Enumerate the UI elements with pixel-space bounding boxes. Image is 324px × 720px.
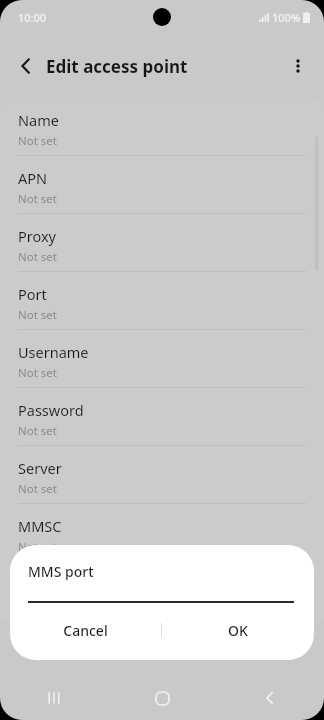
staticText: Not set xyxy=(18,423,57,439)
staticText: Password xyxy=(18,400,84,420)
button[interactable]: Recents xyxy=(0,676,108,720)
button[interactable]: MMS proxy xyxy=(0,562,324,620)
staticText: Username xyxy=(18,342,89,362)
staticText: Not set xyxy=(18,249,57,265)
staticText: OK xyxy=(228,621,248,640)
staticText: 100% xyxy=(272,10,301,25)
button[interactable]: MMSC xyxy=(0,504,324,562)
staticText: Name xyxy=(18,110,59,130)
staticText: Port xyxy=(18,284,47,304)
button[interactable]: Back xyxy=(216,676,324,720)
staticText: Server xyxy=(18,458,62,478)
button[interactable]: Home xyxy=(108,676,216,720)
staticText: Not set xyxy=(18,307,57,323)
staticText: Cancel xyxy=(63,621,108,640)
button[interactable]: Back xyxy=(6,46,46,86)
button[interactable]: APN xyxy=(0,156,324,214)
staticText: Not set xyxy=(18,481,57,497)
staticText: Not set xyxy=(18,133,57,149)
staticText: APN xyxy=(18,168,48,188)
staticText: MMS port xyxy=(28,562,94,581)
staticText: Not set xyxy=(18,365,57,381)
staticText: MMS proxy xyxy=(18,574,95,594)
button[interactable]: Port xyxy=(0,272,324,330)
button[interactable]: Username xyxy=(0,330,324,388)
staticText: Proxy xyxy=(18,226,57,246)
button[interactable]: Proxy xyxy=(0,214,324,272)
staticText: Not set xyxy=(18,539,57,555)
staticText: MMSC xyxy=(18,516,62,536)
button[interactable]: Cancel xyxy=(10,608,161,652)
button[interactable]: Password xyxy=(0,388,324,446)
button[interactable]: OK xyxy=(162,608,314,652)
staticText: Edit access point xyxy=(46,55,188,78)
staticText: Not set xyxy=(18,191,57,207)
button[interactable]: Server xyxy=(0,446,324,504)
button[interactable]: More options xyxy=(278,46,318,86)
button[interactable]: Name xyxy=(0,98,324,156)
staticText: Not set xyxy=(18,597,57,613)
staticText: 10:00 xyxy=(18,10,47,25)
